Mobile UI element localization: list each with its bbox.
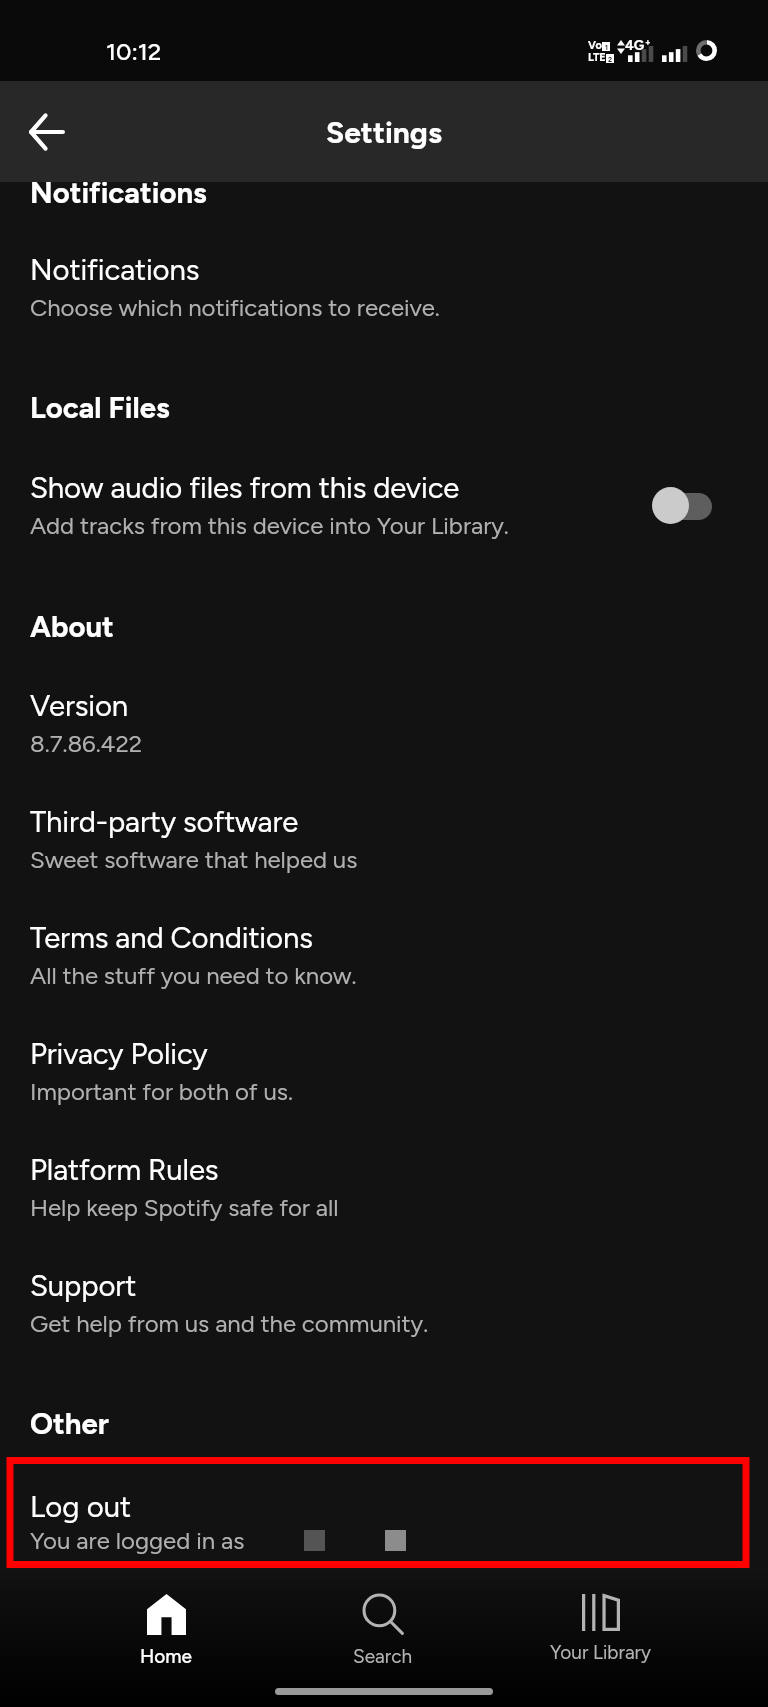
button[interactable]: Your Library (511, 1594, 691, 1664)
staticText: Third-party software (30, 804, 299, 839)
staticText: Important for both of us. (30, 1077, 293, 1106)
button[interactable]: Log out (0, 1457, 768, 1555)
staticText: 2 (608, 55, 613, 63)
button[interactable]: Notifications (0, 252, 768, 322)
staticText: 1 (605, 43, 608, 51)
staticText: Version (30, 688, 128, 723)
button[interactable]: Show audio files from this device (0, 470, 768, 540)
staticText: Settings (326, 114, 442, 150)
staticText: About (30, 609, 114, 644)
staticText: Platform Rules (30, 1152, 219, 1187)
staticText: Home (140, 1645, 192, 1668)
staticText: Log out (30, 1489, 132, 1524)
staticText: Search (353, 1645, 413, 1668)
staticText: + (645, 36, 651, 47)
staticText: Support (30, 1268, 137, 1303)
staticText: Sweet software that helped us (30, 845, 358, 874)
staticText: All the stuff you need to know. (30, 961, 357, 990)
staticText: You are logged in as (30, 1526, 245, 1555)
staticText: Get help from us and the community. (30, 1309, 429, 1338)
staticText: LTE (588, 51, 606, 64)
button[interactable]: Terms and Conditions (0, 920, 768, 990)
button[interactable]: Version (0, 688, 768, 758)
staticText: Add tracks from this device into Your Li… (30, 511, 509, 540)
staticText: Your Library (550, 1641, 652, 1664)
staticText: Vo (588, 39, 602, 52)
staticText: Show audio files from this device (30, 470, 460, 505)
staticText: 10:12 (106, 37, 162, 66)
staticText: Choose which notifications to receive. (30, 293, 440, 322)
staticText: Notifications (30, 175, 207, 210)
staticText: Terms and Conditions (30, 920, 313, 955)
button[interactable]: Search (293, 1594, 473, 1668)
staticText: Privacy Policy (30, 1036, 208, 1071)
button[interactable]: Third-party software (0, 804, 768, 874)
button[interactable]: Back (13, 98, 81, 166)
button[interactable]: Show audio files toggle (650, 485, 716, 527)
staticText: Other (30, 1406, 109, 1441)
button[interactable]: Privacy Policy (0, 1036, 768, 1106)
button[interactable]: Platform Rules (0, 1152, 768, 1222)
staticText: 8.7.86.422 (30, 729, 143, 758)
button[interactable]: Home (76, 1594, 256, 1668)
staticText: Help keep Spotify safe for all (30, 1193, 339, 1222)
staticText: Notifications (30, 252, 200, 287)
staticText: Local Files (30, 390, 170, 425)
staticText: 4G (625, 37, 645, 54)
button[interactable]: Support (0, 1268, 768, 1338)
